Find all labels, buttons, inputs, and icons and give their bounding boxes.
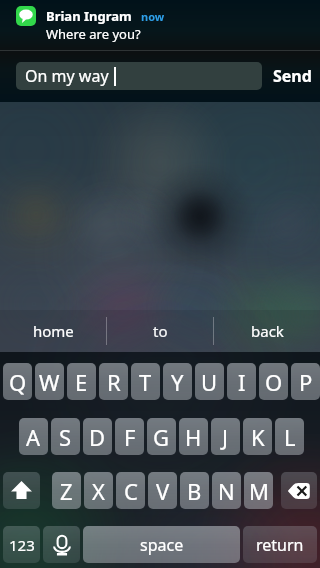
button[interactable]: H — [179, 418, 208, 455]
staticText: I — [238, 367, 246, 397]
button[interactable]: D — [83, 418, 112, 455]
staticText: P — [299, 367, 313, 397]
staticText: On my way — [25, 65, 109, 87]
button[interactable]: Dictate — [43, 526, 80, 563]
button[interactable]: I — [227, 363, 256, 400]
staticText: Y — [171, 367, 184, 397]
staticText: A — [26, 422, 41, 452]
staticText: R — [107, 367, 121, 397]
staticText: T — [139, 367, 152, 397]
button[interactable]: to — [107, 310, 213, 352]
button[interactable]: S — [51, 418, 80, 455]
staticText: space — [140, 534, 184, 556]
button[interactable]: G — [147, 418, 176, 455]
staticText: home — [33, 321, 74, 341]
staticText: U — [201, 367, 218, 397]
button[interactable]: E — [67, 363, 96, 400]
button[interactable]: N — [212, 472, 241, 509]
button[interactable]: V — [148, 472, 177, 509]
staticText: return — [256, 534, 304, 556]
button[interactable]: Y — [163, 363, 192, 400]
button[interactable]: Shift — [3, 472, 40, 509]
staticText: Z — [60, 476, 73, 506]
button[interactable]: Z — [52, 472, 81, 509]
staticText: E — [75, 367, 88, 397]
button[interactable]: Q — [3, 363, 32, 400]
staticText: K — [251, 422, 265, 452]
staticText: D — [89, 422, 106, 452]
staticText: V — [156, 476, 170, 506]
staticText: J — [222, 422, 229, 452]
button[interactable]: R — [99, 363, 128, 400]
staticText: Q — [9, 367, 27, 397]
button[interactable]: X — [84, 472, 113, 509]
staticText: now — [141, 9, 165, 24]
staticText: X — [92, 476, 105, 506]
staticText: H — [185, 422, 202, 452]
button[interactable]: B — [180, 472, 209, 509]
button[interactable]: W — [35, 363, 64, 400]
staticText: M — [249, 476, 269, 506]
button[interactable]: Delete — [281, 472, 317, 509]
button[interactable]: C — [116, 472, 145, 509]
staticText: Where are you? — [46, 25, 141, 43]
button[interactable]: K — [243, 418, 272, 455]
staticText: F — [124, 422, 136, 452]
staticText: O — [265, 367, 283, 397]
staticText: C — [124, 476, 138, 506]
staticText: N — [218, 476, 235, 506]
button[interactable]: A — [19, 418, 48, 455]
button[interactable]: J — [211, 418, 240, 455]
staticText: 123 — [9, 535, 35, 555]
button[interactable]: On my way — [16, 62, 262, 90]
button[interactable]: Send — [273, 62, 312, 90]
staticText: Brian Ingram — [46, 7, 132, 25]
staticText: G — [153, 422, 170, 452]
button[interactable]: M — [244, 472, 273, 509]
staticText: B — [187, 476, 202, 506]
staticText: W — [39, 367, 60, 397]
staticText: back — [251, 321, 284, 341]
button[interactable]: P — [291, 363, 320, 400]
button[interactable]: 123 — [3, 526, 40, 563]
button[interactable]: O — [259, 363, 288, 400]
button[interactable]: T — [131, 363, 160, 400]
button[interactable]: L — [275, 418, 304, 455]
button[interactable]: F — [115, 418, 144, 455]
button[interactable]: space — [83, 526, 240, 563]
staticText: S — [59, 422, 72, 452]
button[interactable]: U — [195, 363, 224, 400]
staticText: to — [153, 321, 168, 341]
staticText: L — [284, 422, 296, 452]
button[interactable]: back — [214, 310, 320, 352]
button[interactable]: return — [243, 526, 317, 563]
staticText: Send — [273, 65, 312, 87]
button[interactable]: home — [0, 310, 106, 352]
